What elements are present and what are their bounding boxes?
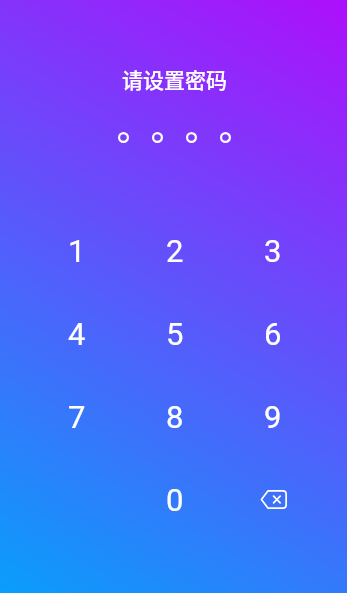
staticText: 8 [166, 399, 184, 435]
staticText: 5 [166, 316, 184, 352]
button[interactable]: 5 [126, 292, 224, 375]
button[interactable]: 8 [126, 375, 224, 458]
button[interactable]: 2 [126, 209, 224, 292]
staticText: 6 [264, 316, 282, 352]
button[interactable]: 1 [28, 209, 126, 292]
button[interactable]: 6 [224, 292, 322, 375]
staticText: 1 [68, 233, 86, 269]
button[interactable]: 0 [126, 458, 224, 541]
button[interactable]: 7 [28, 375, 126, 458]
button[interactable]: 4 [28, 292, 126, 375]
staticText: 4 [68, 316, 86, 352]
button[interactable]: 3 [224, 209, 322, 292]
staticText: 2 [166, 233, 184, 269]
staticText: 0 [166, 482, 184, 518]
button[interactable]: 9 [224, 375, 322, 458]
staticText: 3 [264, 233, 282, 269]
other: Delete [260, 490, 287, 509]
staticText: 7 [68, 399, 86, 435]
staticText: 9 [264, 399, 282, 435]
button[interactable]: Delete [224, 458, 322, 541]
staticText: 请设置密码 [122, 64, 227, 94]
